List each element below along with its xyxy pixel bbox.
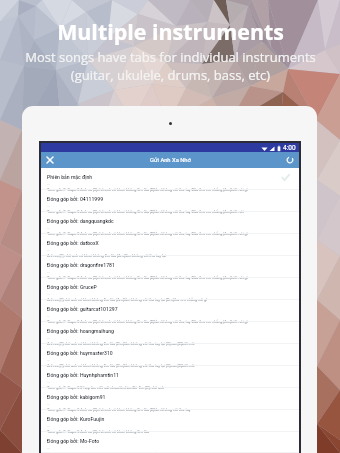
- staticText: Phiên bản mặc định: [47, 174, 305, 180]
- button[interactable]: Đóng góp bởi: hoangmaihung: [41, 322, 299, 344]
- staticText: ...: [47, 380, 50, 384]
- staticText: ...: [47, 248, 50, 252]
- button[interactable]: Đóng góp bởi: dragonfire1781: [41, 256, 299, 278]
- staticText: Tone gốc F: Capo 5 Anh xa [C]nhớ anh có …: [47, 187, 305, 191]
- staticText: ...: [47, 446, 50, 450]
- staticText: Tone gốc F: Capo 5 Anh xa [C]nhớ anh có …: [47, 407, 305, 411]
- button[interactable]: Close: [41, 152, 59, 168]
- staticText: Tone gốc F: Capo 5 Anh xa [C]nhớ anh có …: [47, 451, 305, 453]
- staticText: Đóng góp bởi: datboxX: [47, 240, 305, 246]
- staticText: ...: [47, 314, 50, 318]
- button[interactable]: Đóng góp bởi: GruceP: [41, 278, 299, 300]
- button[interactable]: Refresh: [281, 152, 299, 168]
- staticText: ...: [47, 424, 50, 428]
- staticText: Tone gốc F: Capo 5 2 hợp âm viết sát nha…: [47, 385, 305, 389]
- staticText: Anh xa [F]nhớ anh có khoẻ không Em lâu […: [47, 363, 305, 367]
- button[interactable]: Đóng góp bởi: Mo-Foto: [41, 432, 299, 453]
- staticText: Đóng góp bởi: hoangmaihung: [47, 328, 305, 334]
- button[interactable]: Phiên bản mặc định: [41, 168, 299, 190]
- staticText: ...: [47, 226, 50, 230]
- staticText: Đóng góp bởi: huymaster310: [47, 350, 305, 356]
- staticText: Đóng góp bởi: KuroFuujin: [47, 416, 305, 422]
- button[interactable]: Đóng góp bởi: Huynhphamtin11: [41, 366, 299, 388]
- staticText: ...: [47, 292, 50, 296]
- staticText: Đóng góp bởi: GruceP: [47, 284, 305, 290]
- staticText: Anh xa [F]nhớ anh có khoẻ không Em lâu […: [47, 297, 305, 301]
- staticText: Đóng góp bởi: guitarcat101297: [47, 306, 305, 312]
- staticText: Tone gốc F: Capo 5 Anh xa [C]nhớ anh có …: [47, 429, 305, 433]
- button[interactable]: Đóng góp bởi: guitarcat101297: [41, 300, 299, 322]
- staticText: ...: [47, 182, 50, 186]
- button[interactable]: Đóng góp bởi: 04111999: [41, 190, 299, 212]
- button[interactable]: Đóng góp bởi: kabigom91: [41, 388, 299, 410]
- staticText: ...: [47, 204, 50, 208]
- button[interactable]: Đóng góp bởi: KuroFuujin: [41, 410, 299, 432]
- staticText: ...: [47, 270, 50, 274]
- staticText: ...: [47, 336, 50, 340]
- staticText: 4:00: [283, 144, 296, 152]
- staticText: Tone gốc F: Capo 5 Anh xa [C]nhớ anh có …: [47, 319, 305, 323]
- staticText: Đóng góp bởi: dragonfire1781: [47, 262, 305, 268]
- staticText: Gửi Anh Xa Nhớ: [150, 157, 191, 164]
- button[interactable]: Đóng góp bởi: dangquangkdc: [41, 212, 299, 234]
- staticText: Anh xa [F] nhớ anh có khoẻ không Em lâu …: [47, 253, 305, 257]
- staticText: ...: [47, 402, 50, 406]
- staticText: Đóng góp bởi: kabigom91: [47, 394, 305, 400]
- staticText: Đóng góp bởi: Mo-Foto: [47, 438, 305, 444]
- button[interactable]: Đóng góp bởi: datboxX: [41, 234, 299, 256]
- staticText: Đóng góp bởi: dangquangkdc: [47, 218, 305, 224]
- staticText: Tone gốc F: Capo 5 Anh xa [C]nhớ anh có …: [47, 209, 305, 213]
- staticText: Tone gốc F: Capo 5 Anh xa [C]nhớ anh có …: [47, 231, 305, 235]
- staticText: Most songs have tabs for individual inst…: [25, 48, 316, 84]
- button[interactable]: Đóng góp bởi: huymaster310: [41, 344, 299, 366]
- staticText: Tone gốc F: Capo 5 Anh xa [C]nhớ anh có …: [47, 275, 305, 279]
- staticText: Anh xa [F]nhớ anh có khoẻ không Em lâu […: [47, 341, 305, 345]
- staticText: ...: [47, 358, 50, 362]
- staticText: Đóng góp bởi: 04111999: [47, 196, 305, 202]
- staticText: Multiple instruments: [57, 17, 284, 46]
- staticText: Đóng góp bởi: Huynhphamtin11: [47, 372, 305, 378]
